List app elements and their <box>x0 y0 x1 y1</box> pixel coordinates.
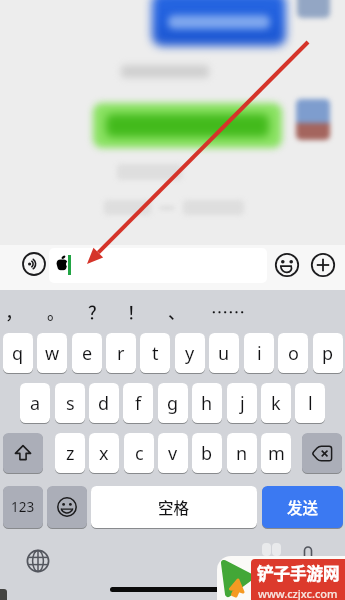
button[interactable]: …… <box>208 298 248 325</box>
button[interactable]: n <box>227 433 257 473</box>
button[interactable]: w <box>37 333 67 373</box>
staticText: f <box>135 391 142 416</box>
staticText: e <box>82 341 93 366</box>
staticText: o <box>288 341 299 366</box>
staticText: i <box>257 341 262 366</box>
button[interactable]: m <box>261 433 291 473</box>
button[interactable]: 空格 <box>91 486 257 528</box>
staticText: 铲子手游网 <box>257 561 340 585</box>
button[interactable] <box>49 248 267 283</box>
staticText: m <box>268 441 285 466</box>
button[interactable]: v <box>158 433 188 473</box>
staticText: q <box>12 341 24 366</box>
button[interactable]: d <box>89 383 119 423</box>
staticText: u <box>218 341 230 366</box>
button[interactable]: u <box>209 333 239 373</box>
staticText: s <box>66 391 75 416</box>
staticText: w <box>45 341 60 366</box>
button[interactable] <box>47 486 87 528</box>
staticText: www.czjxc.com <box>258 586 338 600</box>
button[interactable]: s <box>55 383 85 423</box>
button[interactable]: 。 <box>35 298 75 325</box>
staticText: ？ <box>88 299 105 324</box>
button[interactable]: ？ <box>76 298 116 325</box>
staticText: 空格 <box>158 496 190 518</box>
button[interactable] <box>275 253 299 277</box>
button[interactable] <box>311 253 335 277</box>
staticText: v <box>168 441 178 466</box>
staticText: h <box>201 391 213 416</box>
staticText: 123 <box>11 498 35 516</box>
staticText: d <box>98 391 110 416</box>
button[interactable]: t <box>140 333 170 373</box>
button[interactable]: j <box>227 383 257 423</box>
button[interactable]: i <box>244 333 274 373</box>
button[interactable]: f <box>123 383 153 423</box>
button[interactable]: ， <box>0 298 33 325</box>
staticText: 发送 <box>287 496 319 518</box>
button[interactable]: e <box>72 333 102 373</box>
button[interactable] <box>22 252 46 276</box>
staticText: r <box>117 341 125 366</box>
button[interactable]: p <box>313 333 343 373</box>
staticText: g <box>167 391 179 416</box>
button[interactable]: c <box>124 433 154 473</box>
button[interactable]: l <box>295 383 325 423</box>
button[interactable] <box>3 433 43 473</box>
button[interactable]: o <box>278 333 308 373</box>
button[interactable]: 123 <box>3 486 43 528</box>
staticText: 。 <box>47 299 64 324</box>
staticText: n <box>236 441 248 466</box>
button[interactable]: y <box>175 333 205 373</box>
staticText: ， <box>5 299 22 324</box>
staticText: x <box>99 441 109 466</box>
staticText: p <box>322 341 334 366</box>
button[interactable]: g <box>158 383 188 423</box>
button[interactable]: z <box>55 433 85 473</box>
button[interactable]: x <box>89 433 119 473</box>
button[interactable]: ！ <box>115 298 155 325</box>
staticText: y <box>185 341 195 366</box>
button[interactable] <box>217 556 345 600</box>
staticText: ！ <box>127 299 144 324</box>
button[interactable]: 、 <box>156 298 196 325</box>
staticText: 、 <box>168 299 185 324</box>
staticText: k <box>271 391 281 416</box>
staticText: a <box>30 391 41 416</box>
staticText: …… <box>211 299 245 324</box>
staticText: j <box>240 391 245 416</box>
button[interactable]: r <box>106 333 136 373</box>
staticText: t <box>152 341 159 366</box>
button[interactable] <box>26 549 50 573</box>
staticText: z <box>66 441 75 466</box>
button[interactable]: 铲子手游网 <box>251 559 345 600</box>
button[interactable]: a <box>20 383 50 423</box>
staticText: l <box>308 391 313 416</box>
button[interactable]: k <box>261 383 291 423</box>
button[interactable]: 发送 <box>262 486 343 528</box>
button[interactable] <box>302 433 342 473</box>
staticText: b <box>201 441 213 466</box>
button[interactable]: q <box>3 333 33 373</box>
button[interactable]: h <box>192 383 222 423</box>
staticText: c <box>135 441 144 466</box>
button[interactable]: b <box>192 433 222 473</box>
